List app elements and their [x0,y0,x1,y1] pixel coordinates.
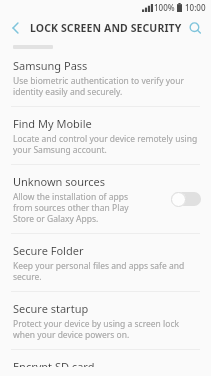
button[interactable]: Encrypt SD card [0,350,211,376]
button[interactable]: Unknown sources [0,165,211,233]
staticText: Samsung Pass [13,58,88,73]
button[interactable]: Back [4,17,26,39]
staticText: Encrypt SD card [13,359,95,367]
button[interactable]: Unknown sources toggle [171,191,201,207]
staticText: LOCK SCREEN AND SECURITY [30,21,182,35]
staticText: 10:00 [185,2,206,13]
staticText: Unknown sources [13,174,106,189]
button[interactable]: Samsung Pass [0,49,211,106]
staticText: Keep your personal files and apps safe a… [13,260,201,282]
button[interactable]: Search [184,17,206,39]
button[interactable]: Find My Mobile [0,107,211,164]
staticText: Allow the installation of apps from sour… [13,191,136,224]
button[interactable]: Secure startup [0,292,211,349]
staticText: Secure Folder [13,243,84,258]
staticText: Use biometric authentication to verify y… [13,75,201,97]
button[interactable]: Secure Folder [0,234,211,291]
staticText: Secure startup [13,301,89,316]
staticText: Protect your device by using a screen lo… [13,318,201,340]
staticText: 100% [154,2,175,13]
staticText: Find My Mobile [13,116,92,131]
staticText: Locate and control your device remotely … [13,133,201,155]
